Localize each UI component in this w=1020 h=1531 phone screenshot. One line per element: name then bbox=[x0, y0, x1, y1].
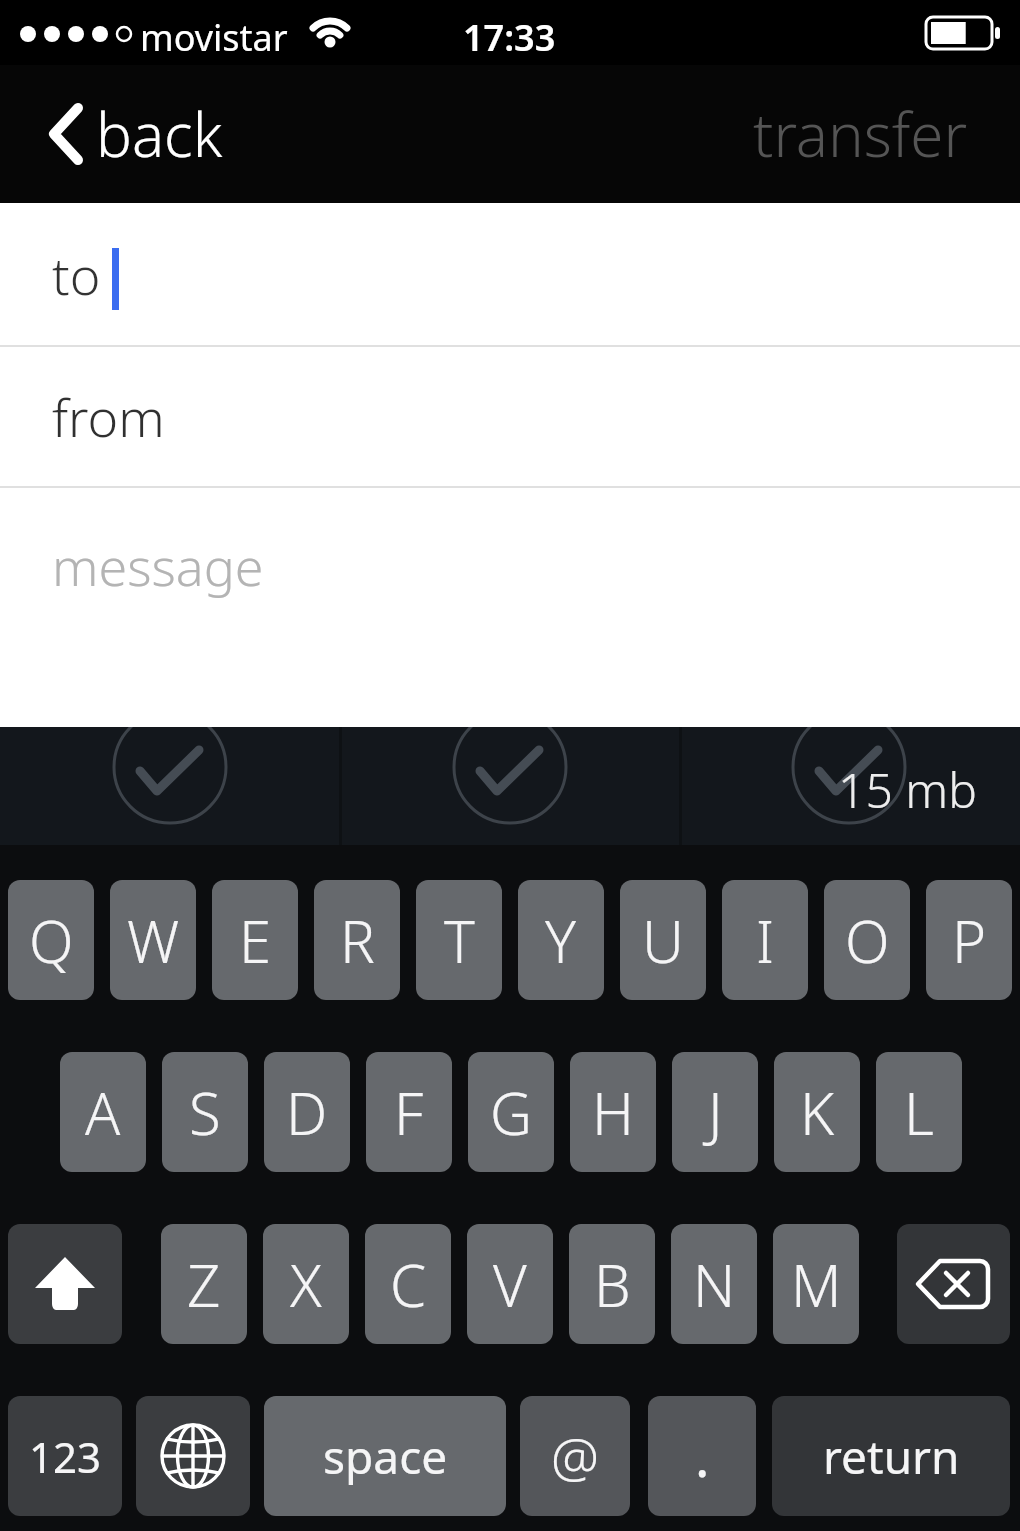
button[interactable]: to bbox=[0, 203, 1020, 345]
button[interactable]: space bbox=[264, 1396, 506, 1516]
button[interactable]: 123 bbox=[8, 1396, 122, 1516]
staticText: X bbox=[290, 1245, 322, 1324]
staticText: to bbox=[52, 239, 101, 310]
staticText: E bbox=[239, 901, 272, 980]
button[interactable]: T bbox=[416, 880, 502, 1000]
staticText: . bbox=[695, 1419, 710, 1493]
button[interactable]: B bbox=[569, 1224, 655, 1344]
staticText: return bbox=[823, 1425, 960, 1488]
staticText: P bbox=[952, 901, 987, 980]
button[interactable]: Z bbox=[161, 1224, 247, 1344]
button[interactable]: H bbox=[570, 1052, 656, 1172]
button[interactable]: S bbox=[162, 1052, 248, 1172]
button[interactable] bbox=[136, 1396, 250, 1516]
button[interactable]: D bbox=[264, 1052, 350, 1172]
button[interactable] bbox=[0, 727, 340, 845]
button[interactable]: from bbox=[0, 347, 1020, 486]
staticText: C bbox=[390, 1245, 427, 1324]
button[interactable]: F bbox=[366, 1052, 452, 1172]
button[interactable]: W bbox=[110, 880, 196, 1000]
button[interactable]: A bbox=[60, 1052, 146, 1172]
staticText: H bbox=[592, 1073, 634, 1152]
staticText: M bbox=[791, 1245, 842, 1324]
staticText: Y bbox=[545, 901, 577, 980]
staticText: U bbox=[642, 901, 684, 980]
staticText: O bbox=[845, 901, 890, 980]
staticText: S bbox=[189, 1073, 221, 1152]
button[interactable]: G bbox=[468, 1052, 554, 1172]
button[interactable]: P bbox=[926, 880, 1012, 1000]
button[interactable] bbox=[340, 727, 680, 845]
button[interactable]: X bbox=[263, 1224, 349, 1344]
button[interactable] bbox=[8, 1224, 122, 1344]
staticText: 15 mb bbox=[838, 757, 977, 822]
button[interactable]: O bbox=[824, 880, 910, 1000]
button[interactable]: E bbox=[212, 880, 298, 1000]
button[interactable]: N bbox=[671, 1224, 757, 1344]
staticText: K bbox=[800, 1073, 835, 1152]
button[interactable]: L bbox=[876, 1052, 962, 1172]
staticText: I bbox=[756, 901, 775, 980]
staticText: Z bbox=[187, 1245, 221, 1324]
staticText: space bbox=[323, 1425, 448, 1488]
button[interactable]: message bbox=[0, 488, 1020, 727]
staticText: back bbox=[96, 93, 223, 175]
staticText: V bbox=[493, 1245, 527, 1324]
button[interactable] bbox=[897, 1224, 1010, 1344]
button[interactable]: R bbox=[314, 880, 400, 1000]
button[interactable]: back bbox=[48, 65, 223, 203]
staticText: B bbox=[594, 1245, 631, 1324]
staticText: 17:33 bbox=[463, 13, 556, 62]
button[interactable]: K bbox=[774, 1052, 860, 1172]
staticText: J bbox=[708, 1073, 723, 1152]
button[interactable]: Y bbox=[518, 880, 604, 1000]
staticText: Q bbox=[29, 901, 74, 980]
button[interactable]: . bbox=[648, 1396, 756, 1516]
staticText: W bbox=[127, 901, 180, 980]
button[interactable]: @ bbox=[520, 1396, 630, 1516]
staticText: G bbox=[490, 1073, 532, 1152]
button[interactable]: transfer bbox=[753, 93, 968, 175]
button[interactable]: return bbox=[772, 1396, 1010, 1516]
staticText: @ bbox=[551, 1419, 599, 1493]
staticText: F bbox=[394, 1073, 424, 1152]
staticText: from bbox=[52, 381, 165, 452]
button[interactable]: J bbox=[672, 1052, 758, 1172]
button[interactable]: I bbox=[722, 880, 808, 1000]
button[interactable]: M bbox=[773, 1224, 859, 1344]
staticText: N bbox=[693, 1245, 736, 1324]
button[interactable]: Q bbox=[8, 880, 94, 1000]
staticText: transfer bbox=[753, 93, 968, 175]
button[interactable] bbox=[680, 727, 1020, 845]
button[interactable]: U bbox=[620, 880, 706, 1000]
staticText: R bbox=[340, 901, 375, 980]
staticText: movistar bbox=[140, 13, 288, 62]
staticText: T bbox=[444, 901, 475, 980]
staticText: A bbox=[85, 1073, 121, 1152]
button[interactable]: V bbox=[467, 1224, 553, 1344]
staticText: message bbox=[52, 530, 264, 601]
staticText: D bbox=[286, 1073, 328, 1152]
button[interactable]: C bbox=[365, 1224, 451, 1344]
staticText: 123 bbox=[29, 1428, 102, 1485]
staticText: L bbox=[904, 1073, 934, 1152]
